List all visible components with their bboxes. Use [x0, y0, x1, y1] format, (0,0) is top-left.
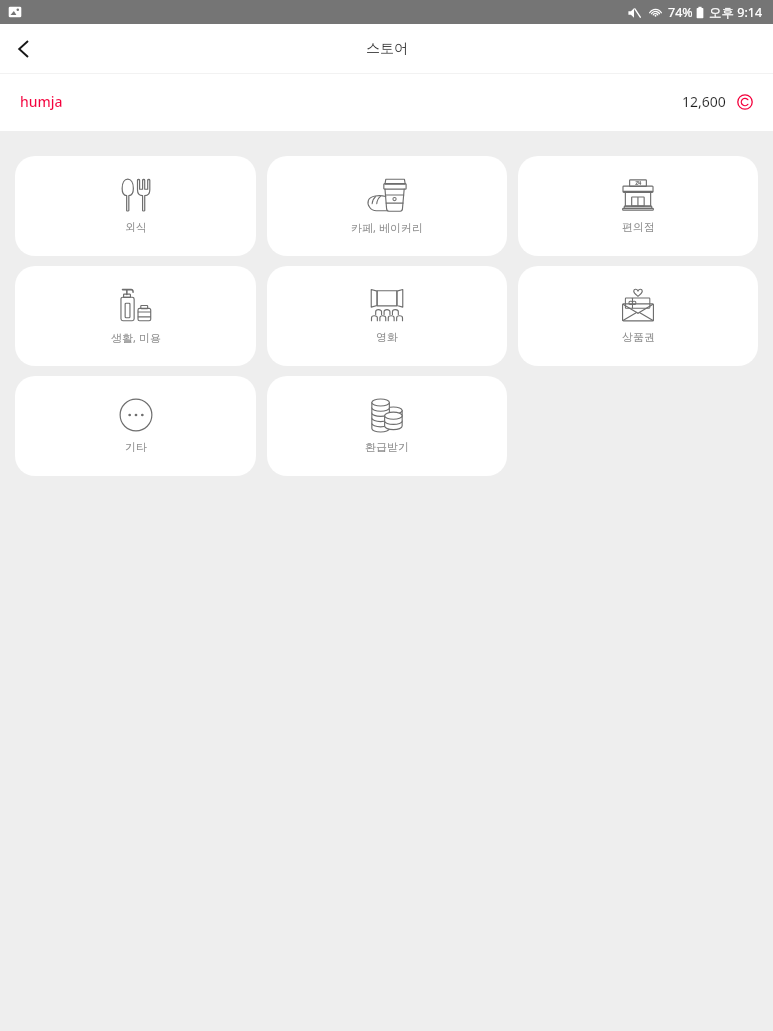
button[interactable]: 영화	[267, 266, 507, 366]
staticText: 상품권	[622, 330, 655, 344]
button[interactable]: 환급받기	[267, 376, 507, 476]
staticText: 기타	[125, 440, 147, 454]
staticText: 12,600	[682, 92, 726, 111]
staticText: 편의점	[622, 220, 655, 234]
staticText: 환급받기	[365, 440, 409, 454]
staticText: humja	[20, 92, 63, 111]
staticText: 외식	[125, 220, 147, 234]
button[interactable]: Back	[0, 25, 48, 73]
button[interactable]: 생활, 미용	[15, 266, 256, 366]
staticText: 스토어	[366, 40, 408, 58]
staticText: 오후 9:14	[709, 4, 763, 21]
staticText: 카페, 베이커리	[351, 220, 423, 235]
staticText: 생활, 미용	[111, 330, 161, 345]
button[interactable]: 기타	[15, 376, 256, 476]
button[interactable]: 상품권	[518, 266, 758, 366]
staticText: 영화	[376, 330, 398, 344]
button[interactable]: 외식	[15, 156, 256, 256]
button[interactable]: 편의점	[518, 156, 758, 256]
button[interactable]: humja	[0, 74, 773, 131]
button[interactable]: 카페, 베이커리	[267, 156, 507, 256]
staticText: 74%	[668, 4, 693, 21]
